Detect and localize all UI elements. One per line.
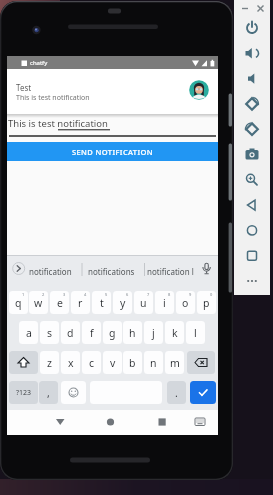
button[interactable] xyxy=(234,266,270,291)
button[interactable]: SEND NOTIFICATION xyxy=(7,142,218,161)
button[interactable]: y xyxy=(113,291,132,314)
button[interactable]: g xyxy=(103,321,122,344)
staticText: p xyxy=(203,296,210,310)
staticText: . xyxy=(175,386,178,400)
button[interactable] xyxy=(61,381,86,404)
staticText: 1 xyxy=(22,292,25,297)
staticText: chatfy xyxy=(30,59,48,67)
staticText: q xyxy=(15,296,22,310)
button[interactable]: o xyxy=(176,291,195,314)
staticText: a xyxy=(26,326,32,340)
staticText: g xyxy=(109,326,116,340)
staticText: s xyxy=(47,326,53,340)
staticText: l xyxy=(194,326,197,340)
button[interactable]: s xyxy=(40,321,59,344)
button[interactable]: p xyxy=(197,291,216,314)
button[interactable]: f xyxy=(82,321,101,344)
staticText: b xyxy=(129,356,136,370)
staticText: Test xyxy=(16,82,32,93)
button[interactable]: z xyxy=(40,351,59,374)
staticText: c xyxy=(89,356,95,370)
staticText: 0 xyxy=(210,292,213,297)
staticText: u xyxy=(140,296,147,310)
button[interactable]: t xyxy=(92,291,111,314)
button[interactable]: x xyxy=(61,351,80,374)
staticText: d xyxy=(67,326,74,340)
staticText: 2 xyxy=(42,292,45,297)
button[interactable]: i xyxy=(155,291,174,314)
button[interactable]: h xyxy=(123,321,142,344)
button[interactable]: r xyxy=(71,291,90,314)
button[interactable] xyxy=(234,166,270,191)
button[interactable] xyxy=(234,191,270,216)
button[interactable]: b xyxy=(123,351,142,374)
staticText: 8 xyxy=(168,292,171,297)
staticText: notification l xyxy=(147,266,194,277)
staticText: This is test notification xyxy=(8,117,108,130)
staticText: k xyxy=(172,326,178,340)
button[interactable]: Test xyxy=(7,69,218,114)
button[interactable] xyxy=(234,241,270,266)
staticText: 4 xyxy=(84,292,87,297)
button[interactable] xyxy=(78,410,148,435)
staticText: 3 xyxy=(63,292,66,297)
staticText: z xyxy=(47,356,52,370)
staticText: v xyxy=(110,356,116,370)
button[interactable] xyxy=(234,116,270,141)
staticText: o xyxy=(182,296,189,310)
button[interactable] xyxy=(9,351,38,374)
button[interactable]: c xyxy=(82,351,101,374)
staticText: SEND NOTIFICATION xyxy=(72,147,154,157)
staticText: f xyxy=(90,326,94,340)
staticText: t xyxy=(100,296,104,310)
button[interactable]: ?123 xyxy=(9,381,38,404)
staticText: 9 xyxy=(189,292,192,297)
staticText: This is test notification xyxy=(16,93,90,103)
button[interactable]: l xyxy=(186,321,205,344)
button[interactable]: , xyxy=(39,381,58,404)
staticText: 6 xyxy=(126,292,129,297)
staticText: 5 xyxy=(105,292,108,297)
button[interactable]: e xyxy=(50,291,69,314)
staticText: , xyxy=(47,386,50,400)
staticText: j xyxy=(152,326,155,340)
staticText: 7 xyxy=(147,292,150,297)
staticText: x xyxy=(68,356,74,370)
staticText: r xyxy=(78,296,83,310)
staticText: notifications xyxy=(88,266,135,277)
button[interactable]: w xyxy=(29,291,48,314)
button[interactable] xyxy=(234,66,270,91)
button[interactable] xyxy=(234,141,270,166)
button[interactable]: q xyxy=(9,291,28,314)
staticText: w xyxy=(34,296,43,310)
staticText: y xyxy=(120,296,126,310)
staticText: e xyxy=(57,296,63,310)
button[interactable]: u xyxy=(134,291,153,314)
button[interactable]: d xyxy=(61,321,80,344)
button[interactable]: n xyxy=(144,351,163,374)
button[interactable]: v xyxy=(103,351,122,374)
staticText: notification xyxy=(29,266,72,277)
staticText: m xyxy=(170,356,180,370)
button[interactable]: j xyxy=(144,321,163,344)
staticText: h xyxy=(129,326,136,340)
staticText: ?123 xyxy=(16,388,32,398)
button[interactable] xyxy=(187,351,215,374)
button[interactable] xyxy=(234,16,270,41)
staticText: i xyxy=(163,296,166,310)
button[interactable] xyxy=(148,410,218,435)
button[interactable]: k xyxy=(165,321,184,344)
button[interactable] xyxy=(234,41,270,66)
button[interactable]: m xyxy=(165,351,184,374)
button[interactable] xyxy=(234,91,270,116)
staticText: n xyxy=(150,356,157,370)
button[interactable] xyxy=(7,410,78,435)
button[interactable] xyxy=(234,216,270,241)
button[interactable] xyxy=(190,381,216,404)
button[interactable]: a xyxy=(19,321,38,344)
button[interactable]: . xyxy=(167,381,186,404)
